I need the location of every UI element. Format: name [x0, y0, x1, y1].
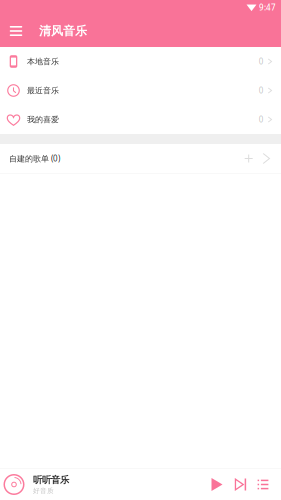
- staticText: 0: [259, 85, 264, 96]
- button[interactable]: 我的喜爱: [0, 105, 281, 134]
- staticText: 我的喜爱: [27, 115, 59, 124]
- button[interactable]: Now playing artwork: [2, 469, 26, 500]
- staticText: 最近音乐: [27, 86, 59, 95]
- button[interactable]: 自建的歌单 (0): [0, 144, 281, 173]
- staticText: 本地音乐: [27, 57, 59, 66]
- staticText: 自建的歌单 (0): [9, 153, 60, 164]
- button[interactable]: Play: [205, 471, 229, 497]
- button[interactable]: Playlist: [252, 471, 274, 497]
- staticText: 0: [259, 114, 264, 125]
- staticText: 0: [259, 56, 264, 67]
- button[interactable]: 本地音乐: [0, 47, 281, 76]
- staticText: 清风音乐: [39, 24, 87, 38]
- staticText: 9:47: [259, 2, 276, 13]
- staticText: 听听音乐: [33, 474, 69, 486]
- button[interactable]: Menu: [3, 17, 29, 45]
- button[interactable]: 最近音乐: [0, 76, 281, 105]
- button[interactable]: Next track: [229, 471, 252, 497]
- staticText: 好音质: [33, 487, 54, 495]
